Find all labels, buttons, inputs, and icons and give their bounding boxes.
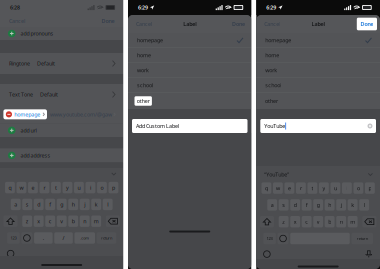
button[interactable]: homepage [128, 33, 251, 48]
button[interactable]: e [28, 182, 38, 193]
staticText: a [271, 201, 274, 208]
button[interactable]: g [57, 199, 67, 210]
button[interactable]: u [330, 182, 340, 194]
button[interactable]: x [34, 215, 44, 227]
button[interactable]: Delete [362, 216, 376, 227]
button[interactable]: o [353, 182, 363, 194]
button[interactable]: n [336, 216, 346, 227]
button[interactable]: j [336, 199, 346, 211]
button[interactable]: add address [0, 148, 123, 162]
button[interactable]: u [74, 182, 84, 193]
button[interactable]: a [267, 199, 277, 211]
button[interactable]: c [45, 215, 55, 227]
button[interactable]: 123 [7, 232, 20, 244]
button[interactable]: w [17, 182, 26, 193]
staticText: work [137, 67, 149, 74]
button[interactable]: 123 [263, 233, 276, 244]
button[interactable]: g [313, 199, 323, 211]
button[interactable]: return [351, 233, 373, 244]
staticText: y [322, 185, 325, 192]
button[interactable]: .com [74, 232, 95, 244]
button[interactable]: Cancel [0, 15, 25, 27]
button[interactable]: y [63, 182, 72, 193]
button[interactable]: q [261, 182, 271, 194]
button[interactable]: add pronouns [0, 27, 123, 40]
button[interactable]: / [54, 232, 73, 244]
staticText: Default [40, 91, 58, 98]
staticText: g [317, 201, 320, 208]
button[interactable]: other [263, 96, 280, 106]
button[interactable]: b [325, 216, 335, 227]
button[interactable]: Ringtone [0, 53, 123, 74]
button[interactable]: e [284, 182, 294, 194]
button[interactable]: i [86, 182, 95, 193]
button[interactable]: d [290, 199, 300, 211]
button[interactable]: f [302, 199, 312, 211]
button[interactable]: b [68, 215, 78, 227]
button[interactable]: o [97, 182, 107, 193]
button[interactable]: c [302, 216, 312, 227]
button[interactable]: Cancel [128, 18, 152, 30]
button[interactable]: h [68, 199, 78, 210]
button[interactable]: Done [101, 15, 123, 27]
button[interactable]: r [296, 182, 306, 194]
button[interactable]: other [134, 96, 152, 106]
button[interactable]: home [256, 48, 380, 63]
button[interactable]: Emoji keyboard [21, 232, 32, 244]
button[interactable]: return [97, 232, 116, 244]
button[interactable]: k [91, 199, 101, 210]
button[interactable]: t [51, 182, 61, 193]
button[interactable]: Text Tone [0, 84, 123, 105]
staticText: 6:28 [10, 4, 20, 11]
button[interactable]: home [128, 48, 251, 63]
button[interactable]: v [57, 215, 67, 227]
button[interactable]: school [256, 78, 380, 93]
button[interactable]: t [307, 182, 317, 194]
button[interactable]: Done [357, 18, 377, 30]
button[interactable]: z [279, 216, 289, 227]
button[interactable]: Cancel [256, 18, 280, 30]
button[interactable]: h [325, 199, 335, 211]
button[interactable]: homepage [256, 33, 380, 48]
button[interactable]: j [80, 199, 90, 210]
button[interactable]: m [348, 216, 358, 227]
button[interactable]: z [22, 215, 32, 227]
button[interactable]: w [273, 182, 283, 194]
button[interactable]: l [103, 199, 113, 210]
button[interactable]: work [128, 63, 251, 78]
button[interactable]: k [348, 199, 358, 211]
button[interactable]: s [279, 199, 289, 211]
button[interactable]: school [128, 78, 251, 93]
button[interactable]: x [290, 216, 300, 227]
button[interactable]: m [91, 215, 101, 227]
button[interactable]: q [5, 182, 15, 193]
button[interactable]: s [22, 199, 32, 210]
button[interactable]: f [45, 199, 55, 210]
button[interactable]: a [11, 199, 21, 210]
button[interactable]: v [313, 216, 323, 227]
button[interactable]: Shift [3, 215, 17, 227]
button[interactable]: p [109, 182, 118, 193]
staticText: Ringtone [9, 60, 30, 67]
button[interactable]: Add Custom Label [132, 119, 247, 133]
staticText: n [340, 218, 343, 225]
button[interactable]: Done [228, 18, 248, 30]
staticText: m [94, 218, 99, 225]
button[interactable]: Emoji keyboard [278, 233, 289, 244]
button[interactable]: y [319, 182, 329, 194]
button[interactable]: Clear text [367, 123, 372, 128]
button[interactable]: n [80, 215, 90, 227]
button[interactable]: p [365, 182, 375, 194]
staticText: 6:29 [266, 4, 276, 11]
button[interactable]: l [359, 199, 369, 211]
button[interactable]: d [34, 199, 44, 210]
button[interactable]: Shift [260, 216, 274, 227]
button[interactable]: Delete [106, 215, 120, 227]
button[interactable]: r [40, 182, 49, 193]
button[interactable]: work [256, 63, 380, 78]
staticText: homepage [265, 37, 291, 44]
button[interactable]: add url [0, 124, 123, 137]
